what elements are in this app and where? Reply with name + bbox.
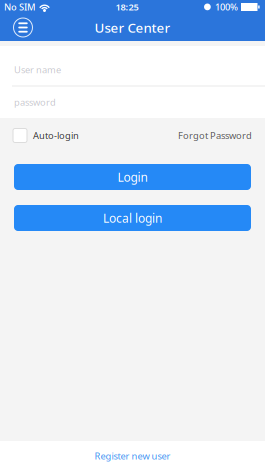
button[interactable]: password [0,86,265,118]
staticText: 18:25 [115,1,138,13]
staticText: 100% [215,1,238,13]
button[interactable]: Local login [14,205,251,231]
button[interactable]: Login [14,164,251,190]
staticText: password [14,96,56,108]
staticText: Register new user [94,450,170,462]
staticText: Forgot Password [178,129,252,142]
button[interactable]: Forgot Password [178,118,252,153]
staticText: Auto-login [33,129,79,142]
staticText: User name [14,64,61,76]
button[interactable]: User name [0,54,265,85]
button[interactable]: Menu [8,12,38,42]
staticText: Login [117,169,147,185]
button[interactable]: Register new user [0,441,265,471]
staticText: No SIM [4,1,36,13]
button[interactable]: Auto-login [13,118,79,153]
staticText: User Center [94,19,170,36]
staticText: Local login [103,210,162,226]
